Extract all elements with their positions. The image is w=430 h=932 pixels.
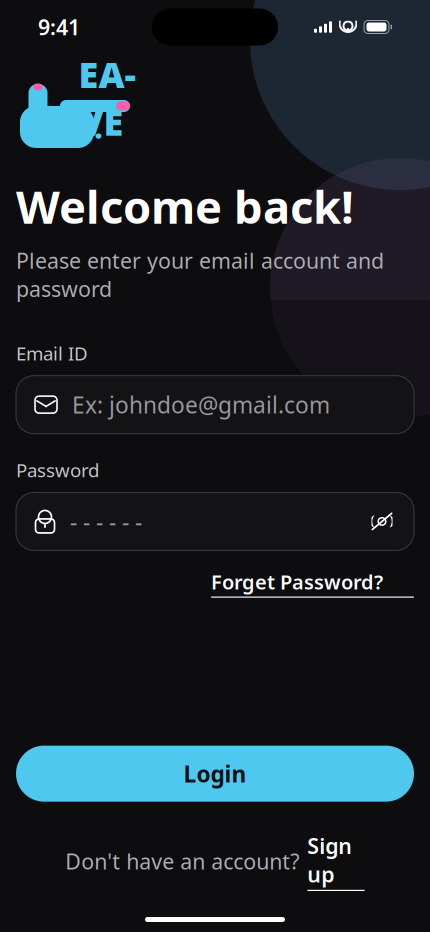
staticText: Login bbox=[183, 759, 246, 789]
button[interactable]: - - - - - - bbox=[16, 492, 414, 550]
staticText: NOW. bbox=[21, 109, 102, 147]
button[interactable]: Sign up bbox=[307, 832, 365, 891]
staticText: 9:41 bbox=[38, 13, 80, 41]
button[interactable]: Forget Password? bbox=[211, 568, 414, 598]
button[interactable]: Ex: johndoe@gmail.com bbox=[16, 376, 414, 434]
staticText: Welcome back! bbox=[16, 176, 354, 236]
staticText: Sign up bbox=[307, 832, 352, 888]
staticText: Please enter your email account and pass… bbox=[16, 246, 384, 303]
button[interactable]: Login bbox=[16, 746, 414, 802]
staticText: Password bbox=[16, 458, 99, 482]
staticText: Don't have an account? bbox=[65, 847, 299, 875]
staticText: EAVE bbox=[78, 50, 135, 146]
staticText: Forget Password? bbox=[211, 568, 383, 595]
staticText: Email ID bbox=[16, 341, 88, 366]
staticText: Ex: johndoe@gmail.com bbox=[72, 390, 330, 420]
staticText: - - - - - - bbox=[70, 506, 142, 536]
